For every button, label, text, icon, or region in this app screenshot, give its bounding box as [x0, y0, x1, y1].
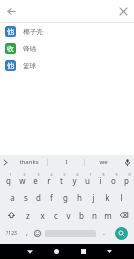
- staticText: e: [33, 175, 38, 186]
- staticText: i: [99, 175, 102, 186]
- staticText: q: [6, 175, 11, 186]
- staticText: g: [63, 192, 68, 203]
- staticText: v: [66, 210, 71, 221]
- staticText: 5: [63, 172, 66, 177]
- staticText: .: [103, 228, 105, 238]
- button[interactable]: l: [114, 188, 128, 206]
- button[interactable]: d: [32, 188, 45, 206]
- button[interactable]: 他: [0, 23, 134, 40]
- button[interactable]: k: [100, 188, 114, 206]
- button[interactable]: [43, 224, 98, 242]
- staticText: o: [111, 175, 116, 186]
- staticText: 篮球: [23, 62, 36, 70]
- button[interactable]: m: [101, 206, 114, 224]
- staticText: 9: [115, 172, 118, 177]
- staticText: 他: [7, 61, 14, 70]
- button[interactable]: 7: [81, 170, 94, 188]
- button[interactable]: thanks: [10, 155, 47, 169]
- staticText: z: [26, 210, 30, 221]
- button[interactable]: x: [35, 206, 49, 224]
- button[interactable]: 2: [15, 170, 29, 188]
- button[interactable]: g: [58, 188, 72, 206]
- button[interactable]: 8: [94, 170, 107, 188]
- button[interactable]: Home: [43, 244, 70, 259]
- staticText: a: [10, 192, 15, 203]
- staticText: w: [19, 175, 26, 186]
- staticText: 4: [50, 172, 53, 177]
- button[interactable]: 4: [42, 170, 55, 188]
- staticText: m: [104, 210, 112, 221]
- staticText: we: [99, 158, 108, 166]
- staticText: 0: [128, 172, 131, 177]
- button[interactable]: .: [98, 224, 109, 242]
- button[interactable]: Recent apps: [70, 244, 97, 259]
- button[interactable]: c: [49, 206, 62, 224]
- button[interactable]: we: [85, 155, 121, 169]
- button[interactable]: 收: [0, 40, 134, 57]
- staticText: y: [72, 175, 77, 186]
- button[interactable]: n: [88, 206, 101, 224]
- button[interactable]: More suggestions: [0, 155, 10, 169]
- staticText: u: [85, 175, 90, 186]
- staticText: 7: [89, 172, 92, 177]
- staticText: k: [105, 192, 110, 203]
- staticText: 2: [23, 172, 26, 177]
- staticText: 锋锚: [23, 45, 36, 53]
- button[interactable]: Shift: [1, 206, 21, 224]
- staticText: 6: [76, 172, 79, 177]
- staticText: l: [120, 192, 123, 203]
- staticText: d: [36, 192, 41, 203]
- staticText: f: [50, 192, 53, 203]
- button[interactable]: 6: [68, 170, 81, 188]
- staticText: 8: [102, 172, 105, 177]
- button[interactable]: a: [6, 188, 19, 206]
- button[interactable]: Emoji: [32, 224, 43, 242]
- staticText: thanks: [19, 158, 39, 166]
- button[interactable]: j: [86, 188, 100, 206]
- staticText: p: [124, 175, 129, 186]
- staticText: 收: [7, 44, 14, 53]
- button[interactable]: Voice input: [121, 155, 134, 169]
- button[interactable]: f: [45, 188, 58, 206]
- staticText: ?123: [6, 230, 17, 237]
- staticText: 1: [9, 172, 12, 177]
- staticText: s: [24, 192, 28, 203]
- button[interactable]: 3: [29, 170, 42, 188]
- staticText: 3: [37, 172, 40, 177]
- staticText: r: [47, 175, 51, 186]
- button[interactable]: 1: [1, 170, 15, 188]
- button[interactable]: ,: [21, 224, 32, 242]
- button[interactable]: s: [19, 188, 32, 206]
- staticText: b: [79, 210, 84, 221]
- button[interactable]: 5: [55, 170, 68, 188]
- staticText: 他: [7, 27, 14, 36]
- staticText: c: [54, 210, 58, 221]
- button[interactable]: v: [62, 206, 75, 224]
- staticText: j: [92, 192, 95, 203]
- button[interactable]: Back: [16, 244, 43, 259]
- button[interactable]: 他: [0, 57, 134, 74]
- button[interactable]: I: [48, 155, 84, 169]
- button[interactable]: Search: [109, 224, 133, 242]
- staticText: t: [60, 175, 63, 186]
- button[interactable]: b: [75, 206, 88, 224]
- staticText: I: [65, 158, 68, 166]
- button[interactable]: Back: [2, 2, 20, 20]
- staticText: n: [92, 210, 97, 221]
- button[interactable]: z: [21, 206, 35, 224]
- button[interactable]: 9: [107, 170, 120, 188]
- button[interactable]: ?123: [1, 224, 21, 242]
- staticText: ,: [26, 228, 28, 238]
- button[interactable]: Backspace: [114, 206, 133, 224]
- button[interactable]: Clear: [115, 3, 131, 19]
- button[interactable]: 0: [120, 170, 133, 188]
- staticText: 椰子壳: [23, 28, 43, 36]
- button[interactable]: h: [72, 188, 86, 206]
- button[interactable]: Hide keyboard: [97, 244, 121, 259]
- staticText: h: [77, 192, 82, 203]
- staticText: x: [40, 210, 45, 221]
